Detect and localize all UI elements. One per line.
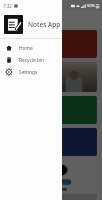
staticText: 1 test xyxy=(9,34,25,42)
other: Home xyxy=(6,45,12,51)
button[interactable]: nts velope xyxy=(5,128,97,156)
button[interactable]: Settings xyxy=(0,66,62,78)
button[interactable] xyxy=(5,160,97,200)
button[interactable] xyxy=(5,62,97,92)
staticText: Settings xyxy=(19,69,38,76)
staticText: 7:32 xyxy=(3,3,12,9)
button[interactable]: Recycle bin xyxy=(0,54,62,66)
button[interactable]: 1 test xyxy=(5,30,97,58)
staticText: 50% xyxy=(87,3,95,8)
staticText: 3 November 2021 xyxy=(9,44,39,49)
button[interactable]: pdio edio apps xyxy=(5,96,97,124)
button[interactable]: Home xyxy=(0,42,62,54)
staticText: Recycle bin xyxy=(19,57,45,64)
staticText: Home xyxy=(19,45,33,52)
other: Recycle bin xyxy=(6,57,12,63)
staticText: Notes App xyxy=(28,20,61,29)
other: Settings xyxy=(6,69,12,75)
